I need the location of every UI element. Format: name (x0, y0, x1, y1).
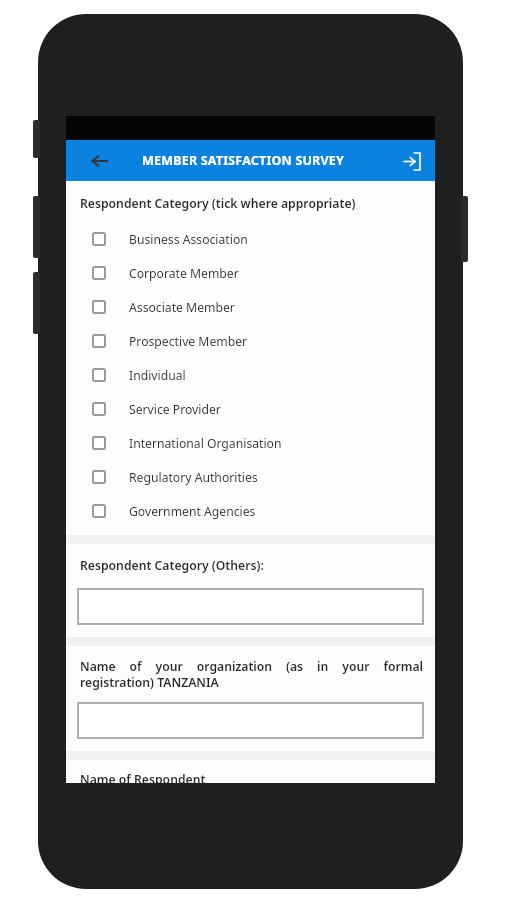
staticText: Respondent Category (tick where appropri… (80, 195, 356, 212)
button[interactable]: Regulatory Authorities (66, 460, 435, 494)
staticText: Corporate Member (129, 265, 239, 282)
staticText: Name of Respondent (80, 771, 206, 783)
button[interactable]: Logout (398, 148, 424, 174)
button[interactable]: Associate Member (66, 290, 435, 324)
staticText: Prospective Member (129, 333, 248, 350)
button[interactable]: Business Association (66, 222, 435, 256)
button[interactable]: Service Provider (66, 392, 435, 426)
button[interactable]: Prospective Member (66, 324, 435, 358)
button[interactable]: International Organisation (66, 426, 435, 460)
button[interactable]: Government Agencies (66, 494, 435, 528)
staticText: Regulatory Authorities (129, 469, 258, 486)
button[interactable]: Back (86, 147, 114, 175)
staticText: Business Association (129, 231, 248, 248)
staticText: Name of your organization (as in your fo… (80, 658, 423, 690)
staticText: Government Agencies (129, 503, 256, 520)
button[interactable]: Corporate Member (66, 256, 435, 290)
button[interactable] (77, 702, 424, 739)
staticText: Associate Member (129, 299, 235, 316)
staticText: Individual (129, 367, 186, 384)
button[interactable]: Individual (66, 358, 435, 392)
staticText: MEMBER SATISFACTION SURVEY (142, 152, 345, 169)
staticText: International Organisation (129, 435, 282, 452)
button[interactable] (77, 588, 424, 625)
staticText: Respondent Category (Others): (80, 557, 264, 574)
staticText: Service Provider (129, 401, 221, 418)
